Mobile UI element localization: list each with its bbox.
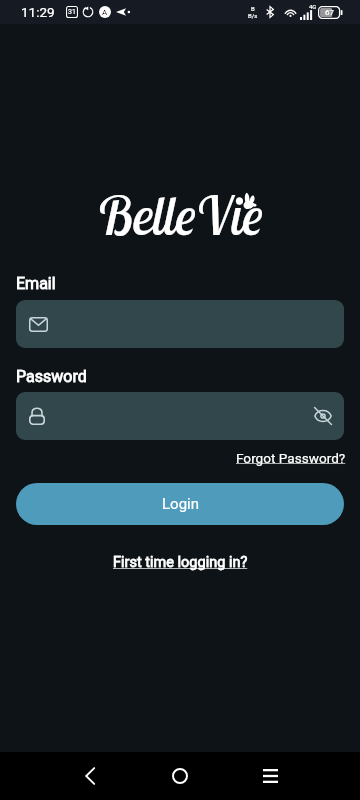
button[interactable]: Back	[45, 752, 135, 800]
staticText: Password	[16, 367, 87, 386]
button[interactable]: Email	[16, 300, 344, 348]
button[interactable]: Show password	[314, 407, 332, 425]
staticText: Login	[162, 495, 199, 513]
staticText: BelleVie	[97, 182, 263, 238]
button[interactable]: Password	[16, 392, 344, 440]
button[interactable]: Login	[16, 483, 344, 525]
button[interactable]: First time logging in?	[111, 551, 250, 574]
button[interactable]: Recent apps	[225, 752, 315, 800]
staticText: Forgot Password?	[236, 450, 346, 466]
button[interactable]: Forgot Password?	[234, 447, 348, 469]
staticText: 11:29	[21, 4, 55, 20]
button[interactable]: Home	[135, 752, 225, 800]
other: Email	[29, 315, 48, 334]
staticText: B/s	[248, 12, 258, 19]
staticText: B	[251, 5, 255, 12]
staticText: First time logging in?	[113, 554, 248, 571]
staticText: 31	[68, 8, 76, 16]
staticText: 67	[325, 8, 334, 17]
staticText: Email	[16, 274, 56, 293]
staticText: A	[102, 8, 108, 17]
staticText: 4G	[309, 3, 317, 10]
other: Password	[29, 407, 45, 425]
